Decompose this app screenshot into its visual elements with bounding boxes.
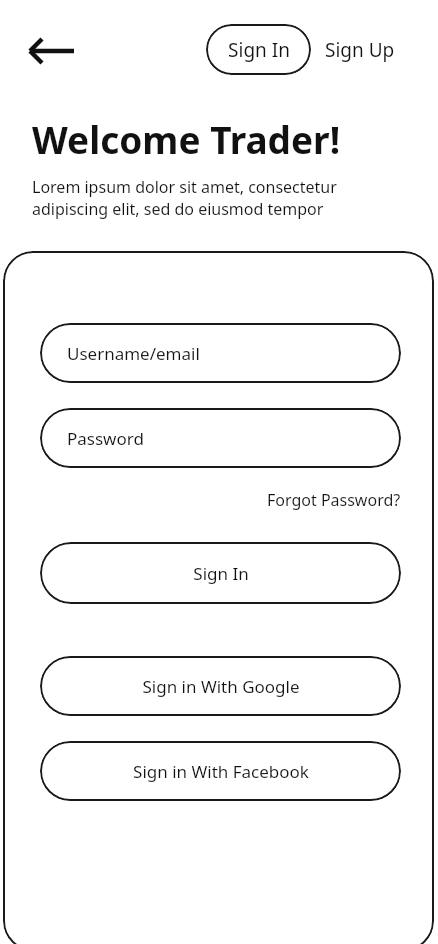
staticText: Sign in With Google	[142, 675, 300, 698]
staticText: Password	[67, 427, 144, 450]
staticText: Welcome Trader!	[32, 114, 341, 164]
button[interactable]: Back	[18, 27, 84, 75]
button[interactable]: Sign In	[206, 24, 311, 75]
staticText: Username/email	[67, 342, 200, 365]
staticText: Sign In	[193, 562, 249, 585]
button[interactable]: Sign In	[40, 542, 401, 604]
staticText: Sign In	[228, 37, 290, 63]
staticText: Lorem ipsum dolor sit amet, consectetur …	[32, 176, 337, 220]
button[interactable]: Forgot Password?	[267, 489, 401, 511]
button[interactable]: Password	[40, 408, 401, 468]
button[interactable]: Sign in With Google	[40, 656, 401, 716]
button[interactable]: Sign Up	[319, 24, 401, 75]
button[interactable]: Sign in With Facebook	[40, 741, 401, 801]
button[interactable]: Username/email	[40, 323, 401, 383]
staticText: Sign in With Facebook	[133, 760, 309, 783]
staticText: Sign Up	[325, 37, 395, 63]
staticText: Forgot Password?	[267, 489, 401, 511]
